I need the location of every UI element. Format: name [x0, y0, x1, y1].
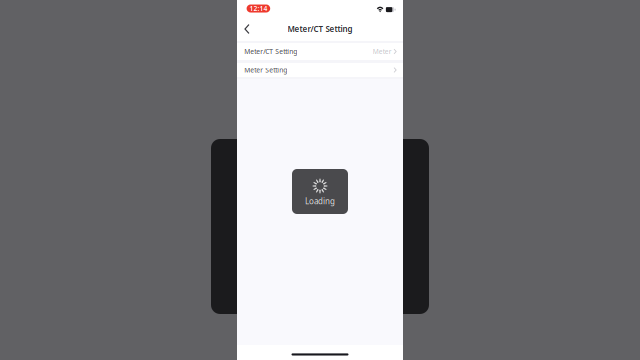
staticText: Meter — [373, 47, 392, 56]
staticText: 12:14 — [249, 4, 267, 13]
staticText: Meter Setting — [244, 66, 287, 74]
staticText: Meter/CT Setting — [287, 24, 352, 34]
staticText: Loading — [305, 196, 335, 206]
button[interactable]: Meter Setting — [237, 63, 403, 77]
staticText: Meter/CT Setting — [244, 47, 297, 56]
button[interactable]: Back — [237, 17, 257, 41]
button[interactable]: Meter/CT Setting — [237, 43, 403, 60]
